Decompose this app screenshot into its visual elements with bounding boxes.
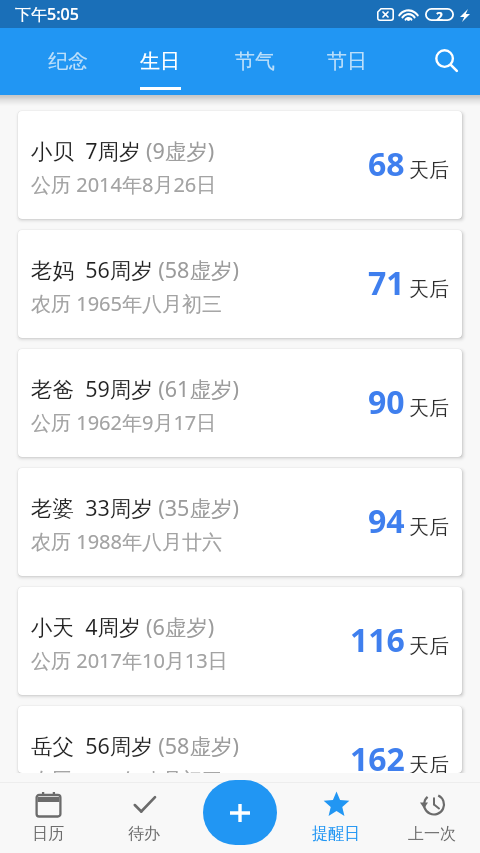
button[interactable]: 提醒日 — [288, 782, 384, 853]
staticText: 老婆 33周岁 (35虚岁) — [31, 493, 239, 522]
staticText: 71 — [368, 261, 405, 305]
button[interactable]: 待办 — [96, 782, 192, 853]
staticText: 天后 — [409, 277, 449, 302]
button[interactable]: 岳父 56周岁 (58虚岁) — [18, 706, 462, 773]
staticText: 小贝 7周岁 (9虚岁) — [31, 136, 215, 165]
button[interactable]: 老爸 59周岁 (61虚岁) — [18, 349, 462, 457]
staticText: 公历 1962年9月17日 — [31, 409, 217, 436]
staticText: 公历 2014年8月26日 — [31, 171, 217, 198]
staticText: 老妈 56周岁 (58虚岁) — [31, 255, 239, 284]
staticText: 小天 4周岁 (6虚岁) — [31, 612, 215, 641]
staticText: 162 — [350, 737, 405, 773]
staticText: 天后 — [409, 753, 449, 773]
staticText: 94 — [368, 499, 405, 543]
button[interactable]: 生日 — [116, 28, 204, 95]
button[interactable]: 老婆 33周岁 (35虚岁) — [18, 468, 462, 576]
staticText: 日历 — [32, 824, 64, 844]
staticText: 天后 — [409, 158, 449, 183]
staticText: 90 — [368, 380, 405, 424]
staticText: 下午5:05 — [15, 3, 79, 25]
staticText: 待办 — [128, 824, 160, 844]
button[interactable]: 上一次 — [384, 782, 480, 853]
button[interactable]: 日历 — [0, 782, 96, 853]
button[interactable]: 老妈 56周岁 (58虚岁) — [18, 230, 462, 338]
button[interactable]: 小天 4周岁 (6虚岁) — [18, 587, 462, 695]
staticText: 农历 1965年八月初三 — [31, 766, 222, 773]
staticText: 公历 2017年10月13日 — [31, 647, 228, 674]
staticText: 节气 — [235, 49, 275, 74]
button[interactable]: Search — [419, 28, 475, 95]
staticText: 节日 — [327, 49, 367, 74]
staticText: 农历 1988年八月廿六 — [31, 528, 222, 555]
button[interactable]: 节气 — [211, 28, 299, 95]
staticText: 2 — [436, 8, 443, 21]
staticText: 农历 1965年八月初三 — [31, 290, 222, 317]
button[interactable]: Add — [203, 780, 277, 845]
staticText: 116 — [350, 618, 405, 662]
staticText: 老爸 59周岁 (61虚岁) — [31, 374, 239, 403]
staticText: 生日 — [140, 49, 180, 74]
staticText: 天后 — [409, 634, 449, 659]
button[interactable]: 小贝 7周岁 (9虚岁) — [18, 111, 462, 219]
staticText: 提醒日 — [312, 824, 360, 844]
staticText: 岳父 56周岁 (58虚岁) — [31, 731, 239, 760]
button[interactable]: 纪念 — [24, 28, 112, 95]
staticText: 天后 — [409, 515, 449, 540]
staticText: 68 — [368, 142, 405, 186]
staticText: 天后 — [409, 396, 449, 421]
staticText: 上一次 — [408, 824, 456, 844]
staticText: 纪念 — [48, 49, 88, 74]
button[interactable]: 节日 — [303, 28, 391, 95]
